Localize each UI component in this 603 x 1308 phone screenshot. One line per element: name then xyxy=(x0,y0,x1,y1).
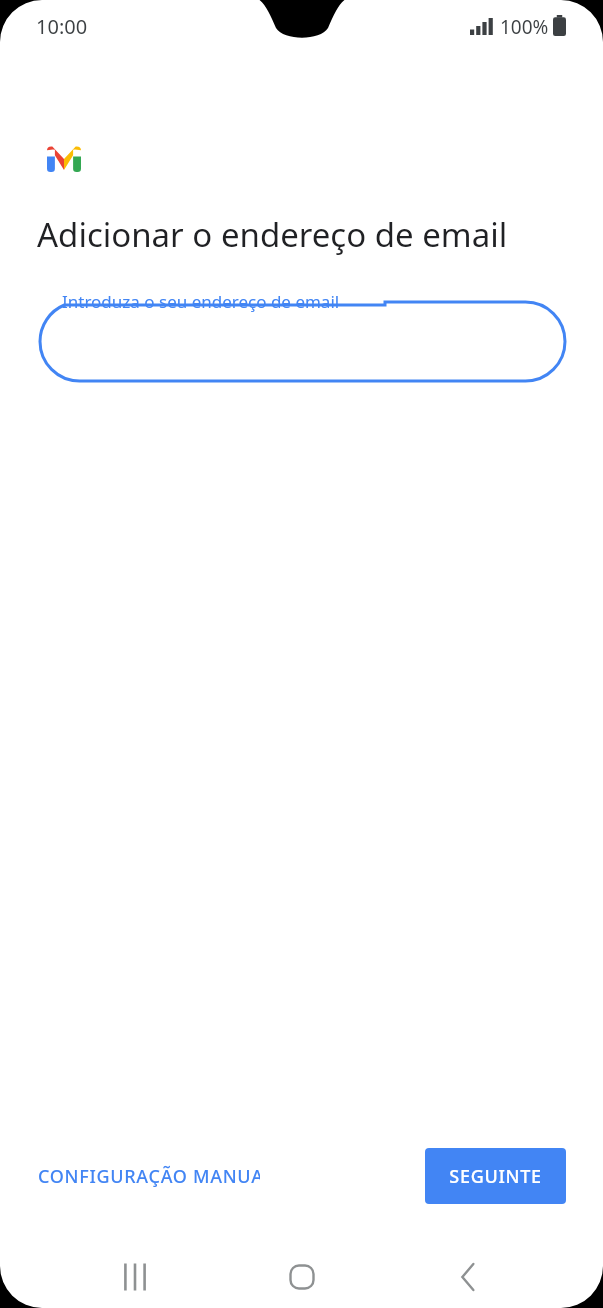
staticText: SEGUINTE xyxy=(449,1164,542,1189)
staticText: Adicionar o endereço de email xyxy=(37,212,508,257)
staticText: CONFIGURAÇÃO MANUAL xyxy=(38,1164,260,1189)
button[interactable]: SEGUINTE xyxy=(425,1148,566,1204)
staticText: Introduza o seu endereço de email xyxy=(62,290,340,313)
button[interactable]: CONFIGURAÇÃO MANUAL xyxy=(24,1150,260,1202)
staticText: 10:00 xyxy=(36,13,88,40)
button[interactable]: Back xyxy=(436,1243,504,1308)
button[interactable]: Introduza o seu endereço de email xyxy=(40,302,565,381)
button[interactable]: Home xyxy=(268,1243,336,1308)
button[interactable]: Recent apps xyxy=(101,1243,169,1308)
staticText: 100% xyxy=(500,14,549,40)
